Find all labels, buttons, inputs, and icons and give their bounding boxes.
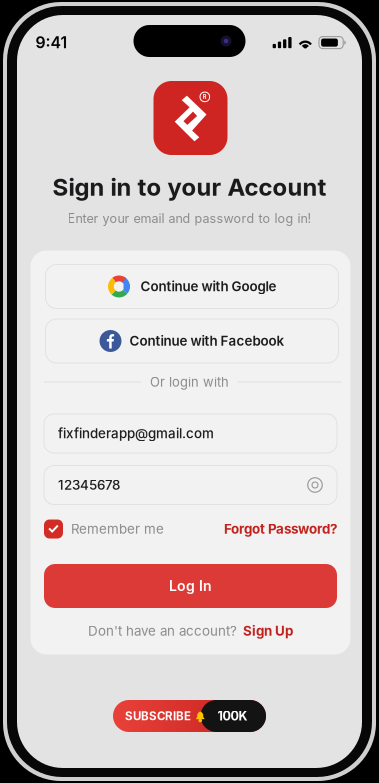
staticText: R	[203, 93, 207, 100]
staticText: Don't have an account?	[88, 623, 237, 639]
staticText: Enter your email and password to log in!	[67, 211, 311, 226]
staticText: Sign in to your Account	[52, 172, 326, 201]
button[interactable]: Continue with Google	[45, 264, 338, 308]
staticText: 100K	[217, 708, 247, 724]
staticText: Sign Up	[243, 623, 293, 639]
staticText: Continue with Google	[140, 278, 276, 294]
button[interactable]: Remember me	[44, 519, 164, 538]
staticText: 9:41	[35, 33, 67, 52]
staticText: 12345678	[58, 477, 120, 493]
staticText: SUBSCRIBE	[125, 709, 191, 723]
button[interactable]: Show password	[307, 477, 323, 493]
staticText: fixfinderapp@gmail.com	[58, 425, 214, 441]
staticText: Log In	[169, 577, 212, 594]
button[interactable]: Log In	[44, 564, 337, 608]
button[interactable]: Sign Up	[243, 623, 293, 639]
staticText: Forgot Password?	[224, 521, 337, 537]
button[interactable]: SUBSCRIBE	[113, 700, 266, 732]
button[interactable]: Continue with Facebook	[45, 319, 338, 363]
button[interactable]: Forgot Password?	[224, 521, 337, 537]
staticText: Continue with Facebook	[129, 333, 284, 349]
staticText: Remember me	[71, 521, 164, 537]
staticText: Or login with	[150, 374, 229, 390]
